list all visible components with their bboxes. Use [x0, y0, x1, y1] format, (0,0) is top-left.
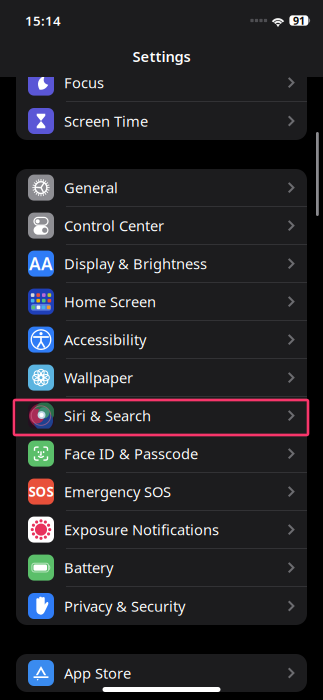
button[interactable]: Wallpaper [16, 359, 307, 397]
staticText: Control Center [64, 216, 164, 235]
button[interactable]: Exposure Notifications [16, 511, 307, 549]
button[interactable]: Home Screen [16, 283, 307, 321]
button[interactable]: AA [16, 245, 307, 283]
staticText: Emergency SOS [64, 482, 171, 501]
button[interactable]: Focus [16, 64, 307, 102]
staticText: Screen Time [64, 111, 148, 131]
button[interactable]: Battery [16, 549, 307, 587]
staticText: Settings [132, 46, 190, 66]
button[interactable]: General [16, 169, 307, 207]
staticText: 91 [293, 13, 305, 28]
staticText: Exposure Notifications [64, 520, 219, 539]
button[interactable]: SOS [16, 473, 307, 511]
staticText: Home Screen [64, 292, 156, 311]
staticText: AA [29, 252, 53, 275]
staticText: General [64, 178, 118, 197]
staticText: Privacy & Security [64, 596, 185, 616]
button[interactable]: Control Center [16, 207, 307, 245]
staticText: App Store [64, 663, 131, 683]
staticText: Siri & Search [64, 406, 151, 425]
staticText: Face ID & Passcode [64, 444, 198, 463]
button[interactable]: Face ID & Passcode [16, 435, 307, 473]
staticText: Battery [64, 558, 113, 577]
staticText: Accessibility [64, 330, 146, 349]
staticText: Wallpaper [64, 368, 133, 387]
button[interactable]: Siri & Search [16, 397, 307, 435]
button[interactable]: App Store [16, 654, 307, 692]
button[interactable]: Accessibility [16, 321, 307, 359]
button[interactable]: Screen Time [16, 102, 307, 140]
staticText: Focus [64, 73, 104, 92]
staticText: Display & Brightness [64, 254, 207, 273]
button[interactable]: Privacy & Security [16, 587, 307, 625]
staticText: SOS [28, 483, 53, 500]
staticText: 15:14 [25, 12, 61, 29]
